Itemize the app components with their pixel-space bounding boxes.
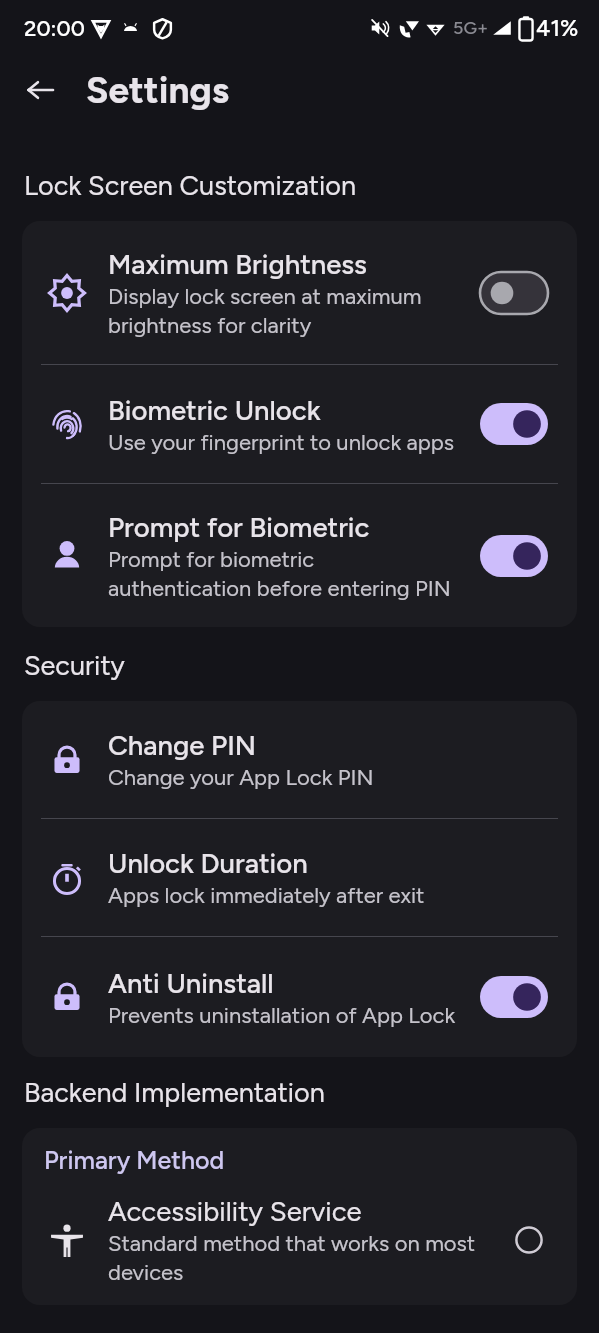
button[interactable]: Change PIN [22, 701, 577, 818]
staticText: Settings [86, 68, 229, 112]
staticText: Prompt for Biometric [108, 511, 370, 544]
button[interactable]: Prompt for Biometric [22, 484, 577, 627]
button[interactable]: Toggle off [475, 268, 553, 318]
staticText: Security [24, 649, 125, 681]
staticText: Maximum Brightness [108, 248, 367, 281]
button[interactable]: Anti Uninstall [22, 937, 577, 1057]
staticText: Backend Implementation [24, 1076, 325, 1108]
staticText: 20:00 [24, 15, 85, 41]
button[interactable]: Unlock Duration [22, 819, 577, 936]
staticText: Prevents uninstallation of App Lock [108, 1002, 456, 1028]
staticText: Biometric Unlock [108, 394, 321, 427]
staticText: 41% [536, 14, 579, 42]
staticText: Change your App Lock PIN [108, 764, 374, 790]
staticText: Standard method that works on most devic… [108, 1230, 476, 1285]
staticText: Accessibility Service [108, 1195, 362, 1228]
button[interactable]: Toggle on [475, 972, 553, 1022]
staticText: Primary Method [44, 1145, 225, 1175]
staticText: Display lock screen at maximum brightnes… [108, 283, 422, 338]
staticText: Lock Screen Customization [24, 169, 356, 201]
button[interactable]: Back [16, 66, 64, 114]
staticText: Prompt for biometric authentication befo… [108, 546, 451, 601]
staticText: Use your fingerprint to unlock apps [108, 429, 454, 455]
staticText: Unlock Duration [108, 847, 308, 880]
button[interactable]: Accessibility Service [22, 1175, 577, 1305]
button[interactable]: Biometric Unlock [22, 365, 577, 483]
staticText: Change PIN [108, 729, 257, 762]
button[interactable]: Toggle on [475, 399, 553, 449]
staticText: Apps lock immediately after exit [108, 882, 425, 908]
staticText: 5G+ [453, 17, 489, 39]
staticText: Anti Uninstall [108, 967, 274, 1000]
button[interactable]: Maximum Brightness [22, 221, 577, 364]
button[interactable]: Toggle on [475, 531, 553, 581]
button[interactable]: Select Accessibility Service [505, 1216, 553, 1264]
